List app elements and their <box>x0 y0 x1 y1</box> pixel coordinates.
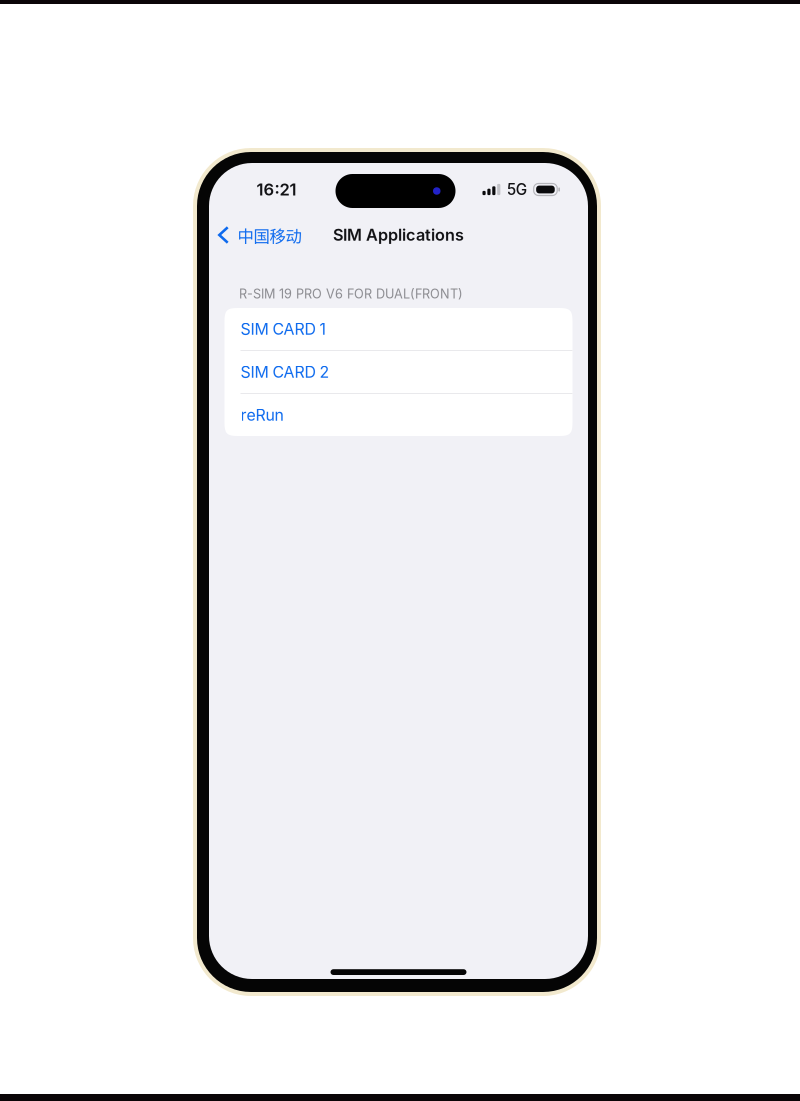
staticText: SIM CARD 1 <box>240 319 325 339</box>
staticText: 16:21 <box>256 179 296 199</box>
staticText: SIM Applications <box>333 225 464 245</box>
staticText: R-SIM 19 PRO V6 FOR DUAL(FRONT) <box>239 286 463 302</box>
button[interactable]: reRun <box>224 394 572 436</box>
button[interactable]: 中国移动 <box>209 216 311 254</box>
staticText: SIM CARD 2 <box>240 362 329 382</box>
staticText: reRun <box>240 405 283 425</box>
staticText: 中国移动 <box>237 223 301 247</box>
button[interactable]: SIM CARD 1 <box>224 308 572 351</box>
button[interactable]: SIM CARD 2 <box>224 351 572 394</box>
staticText: 5G <box>507 180 527 199</box>
